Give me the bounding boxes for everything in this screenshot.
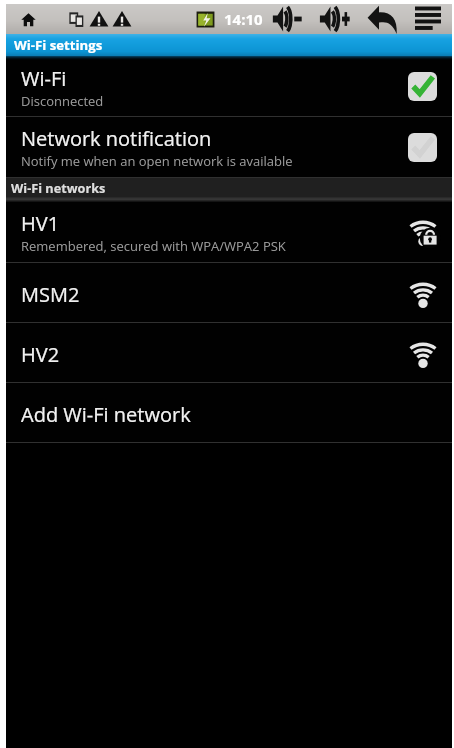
staticText: Wi-Fi networks <box>11 179 106 196</box>
staticText: Notify me when an open network is availa… <box>21 152 293 170</box>
staticText: Remembered, secured with WPA/WPA2 PSK <box>21 237 286 255</box>
other: Secured network <box>409 219 437 247</box>
staticText: HV1 <box>21 210 60 237</box>
button[interactable]: HV1 <box>6 202 452 263</box>
button[interactable]: Wi-Fi <box>6 56 452 117</box>
other: Open network <box>409 341 437 369</box>
button[interactable]: MSM2 <box>6 263 452 323</box>
button[interactable]: Network notification <box>6 117 452 178</box>
other: Open network <box>409 281 437 309</box>
staticText: Wi-Fi settings <box>14 36 103 54</box>
staticText: HV2 <box>21 341 60 368</box>
staticText: MSM2 <box>21 281 80 308</box>
staticText: Network notification <box>21 125 212 152</box>
button[interactable]: Add Wi-Fi network <box>6 383 452 443</box>
button[interactable]: HV2 <box>6 323 452 383</box>
staticText: Add Wi-Fi network <box>21 401 191 428</box>
staticText: Wi-Fi <box>21 65 67 92</box>
staticText: 14:10 <box>224 9 263 29</box>
staticText: Disconnected <box>21 92 104 110</box>
